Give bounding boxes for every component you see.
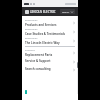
button[interactable]: SUPPORT bbox=[22, 48, 78, 57]
button[interactable]: Open bbox=[72, 68, 75, 71]
button[interactable]: MENU bbox=[60, 9, 75, 14]
button[interactable]: RESOURCES bbox=[22, 36, 78, 45]
staticText: Service & Support bbox=[25, 59, 51, 63]
staticText: Search consulting bbox=[25, 67, 51, 71]
staticText: LINCOLN ELECTRIC bbox=[30, 10, 56, 14]
button[interactable]: Brand name bbox=[30, 10, 56, 14]
button[interactable]: RESOURCES bbox=[22, 27, 78, 36]
staticText: SUPPORT bbox=[25, 49, 35, 52]
staticText: Replacement Parts bbox=[25, 53, 53, 57]
button[interactable]: RESOURCES bbox=[22, 18, 78, 27]
staticText: RESOURCES bbox=[25, 19, 38, 22]
button[interactable]: Open bbox=[72, 30, 75, 33]
button[interactable]: Chat with us bbox=[25, 90, 27, 94]
button[interactable]: Open bbox=[72, 39, 75, 42]
staticText: RESOURCES bbox=[25, 37, 38, 40]
button[interactable]: Open bbox=[72, 60, 75, 63]
staticText: Case Studies & Testimonials bbox=[25, 32, 65, 36]
staticText: The Lincoln Electric Way bbox=[25, 41, 60, 45]
button[interactable]: Home logo bbox=[25, 10, 29, 14]
button[interactable]: Open bbox=[72, 21, 75, 24]
button[interactable]: Search consulting bbox=[22, 65, 78, 73]
staticText: MENU bbox=[62, 10, 70, 13]
button[interactable]: Service & Support bbox=[22, 57, 78, 65]
staticText: RESOURCES bbox=[25, 28, 38, 31]
button[interactable]: Open bbox=[72, 51, 75, 54]
staticText: Products and Services bbox=[25, 23, 57, 27]
